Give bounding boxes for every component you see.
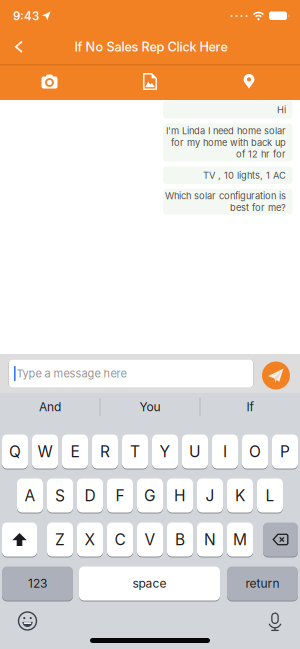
staticText: You (139, 400, 160, 414)
staticText: Which solar configuration is best for me… (164, 190, 285, 213)
staticText: G (144, 486, 156, 505)
button[interactable]: Camera (33, 66, 65, 97)
staticText: Z (55, 530, 65, 549)
button[interactable]: You (102, 393, 198, 421)
staticText: V (144, 530, 155, 549)
staticText: P (280, 442, 290, 461)
button[interactable]: Delete (263, 522, 298, 557)
button[interactable]: K (227, 478, 253, 513)
staticText: M (233, 530, 247, 549)
button[interactable]: Type a message here (8, 358, 254, 388)
staticText: B (175, 530, 185, 549)
staticText: Y (159, 442, 170, 461)
button[interactable]: J (197, 478, 223, 513)
button[interactable]: X (77, 522, 103, 557)
staticText: U (189, 442, 201, 461)
button[interactable]: B (167, 522, 193, 557)
button[interactable]: A (17, 478, 43, 513)
staticText: J (205, 486, 214, 505)
button[interactable]: And (2, 393, 98, 421)
staticText: 9:43 (13, 9, 39, 23)
staticText: 123 (28, 576, 47, 591)
staticText: return (245, 576, 279, 591)
staticText: space (132, 576, 166, 591)
staticText: If No Sales Rep Click Here (74, 39, 227, 54)
button[interactable]: Q (2, 434, 28, 469)
button[interactable]: P (272, 434, 298, 469)
button[interactable]: T (122, 434, 148, 469)
button[interactable]: M (227, 522, 253, 557)
button[interactable]: Share location (235, 66, 263, 97)
staticText: If (246, 400, 253, 414)
button[interactable]: Numbers (2, 566, 73, 601)
button[interactable]: Shift (2, 522, 37, 557)
staticText: I'm Linda I need home solar for my home … (165, 125, 285, 160)
button[interactable]: S (47, 478, 73, 513)
button[interactable]: Send (262, 361, 290, 389)
button[interactable]: Back (5, 31, 33, 62)
button[interactable]: I (212, 434, 238, 469)
button[interactable]: V (137, 522, 163, 557)
staticText: E (70, 442, 79, 461)
button[interactable]: H (167, 478, 193, 513)
staticText: W (37, 442, 52, 461)
staticText: Type a message here (17, 367, 127, 380)
staticText: F (115, 486, 124, 505)
button[interactable]: G (137, 478, 163, 513)
button[interactable]: space (79, 566, 220, 601)
staticText: Q (9, 442, 21, 461)
button[interactable]: W (32, 434, 58, 469)
staticText: K (235, 486, 245, 505)
staticText: X (84, 530, 95, 549)
button[interactable]: C (107, 522, 133, 557)
button[interactable]: E (62, 434, 88, 469)
staticText: T (130, 442, 140, 461)
staticText: R (100, 442, 110, 461)
button[interactable]: Dictate (261, 606, 288, 637)
button[interactable]: Emoji (12, 605, 43, 636)
staticText: And (39, 400, 61, 414)
staticText: N (204, 530, 216, 549)
staticText: D (84, 486, 95, 505)
staticText: Hi (276, 104, 285, 115)
button[interactable]: Z (47, 522, 73, 557)
button[interactable]: If (202, 393, 298, 421)
button[interactable]: Attach image (135, 65, 165, 98)
button[interactable]: U (182, 434, 208, 469)
staticText: C (114, 530, 125, 549)
staticText: I (223, 442, 227, 461)
button[interactable]: R (92, 434, 118, 469)
staticText: L (265, 486, 274, 505)
staticText: A (24, 486, 35, 505)
staticText: TV , 10 lights, 1 AC (202, 170, 285, 181)
staticText: S (55, 486, 65, 505)
button[interactable]: return (227, 566, 298, 601)
button[interactable]: Y (152, 434, 178, 469)
button[interactable]: L (257, 478, 283, 513)
button[interactable]: D (77, 478, 103, 513)
button[interactable]: N (197, 522, 223, 557)
staticText: O (249, 442, 261, 461)
button[interactable]: F (107, 478, 133, 513)
button[interactable]: O (242, 434, 268, 469)
staticText: H (174, 486, 186, 505)
